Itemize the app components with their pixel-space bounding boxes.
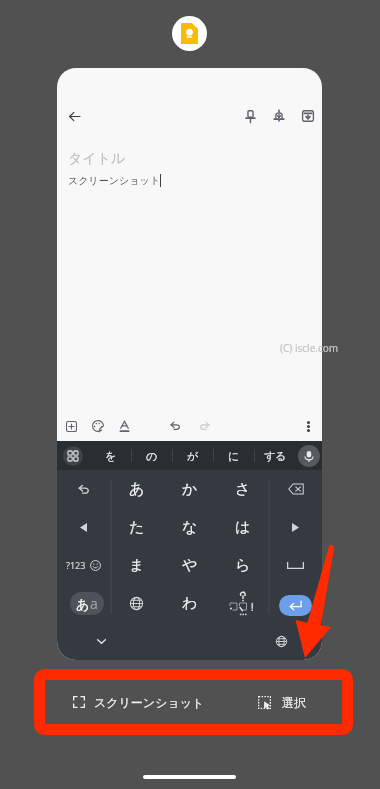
button[interactable] (269, 546, 322, 584)
button[interactable]: Change language (269, 629, 293, 653)
staticText: ま (129, 556, 145, 575)
button[interactable]: わ (163, 584, 216, 622)
button[interactable]: Redo (193, 414, 217, 438)
button[interactable] (216, 584, 269, 622)
button[interactable]: た (110, 508, 163, 546)
staticText: する (264, 449, 287, 463)
staticText: ?123 (66, 559, 86, 571)
staticText: あ (76, 596, 90, 612)
staticText: さ (235, 480, 251, 499)
button[interactable] (57, 508, 110, 546)
button[interactable]: ?123 (57, 546, 110, 584)
staticText: わ (182, 594, 198, 613)
button[interactable] (269, 470, 322, 508)
button[interactable]: Reminder (266, 103, 292, 129)
staticText: か (182, 480, 198, 499)
button[interactable]: Colour (86, 414, 110, 438)
button[interactable]: に (214, 441, 254, 470)
button[interactable]: の (132, 441, 172, 470)
button[interactable]: Enter (269, 584, 322, 622)
staticText: た (129, 518, 145, 537)
button[interactable] (110, 584, 163, 622)
staticText: や (182, 556, 198, 575)
button[interactable]: More options (296, 414, 320, 438)
button[interactable]: Google Keep (172, 16, 207, 51)
button[interactable]: か (163, 470, 216, 508)
staticText: タイトル (68, 150, 126, 168)
staticText: あ (129, 480, 145, 499)
button[interactable]: Back (61, 103, 87, 129)
button[interactable]: あ (57, 584, 110, 622)
button[interactable]: スクリーンショット (40, 681, 215, 723)
button[interactable]: が (173, 441, 213, 470)
button[interactable]: ま (110, 546, 163, 584)
button[interactable] (57, 470, 110, 508)
button[interactable]: Hide keyboard (89, 629, 113, 653)
staticText: 選択 (282, 695, 306, 710)
button[interactable]: あ (110, 470, 163, 508)
button[interactable]: を (90, 441, 131, 470)
staticText: スクリーンショット (94, 695, 205, 710)
staticText: を (105, 449, 117, 463)
button[interactable]: Undo (163, 414, 187, 438)
staticText: スクリーンショット (68, 174, 160, 187)
button[interactable]: な (163, 508, 216, 546)
staticText: a (90, 594, 98, 613)
button[interactable]: 選択 (215, 681, 347, 723)
button[interactable]: Toolbar (63, 446, 83, 466)
button[interactable]: Format (112, 414, 136, 438)
button[interactable]: Archive (295, 103, 321, 129)
button[interactable] (269, 508, 322, 546)
button[interactable]: Voice input (298, 445, 320, 467)
staticText: が (187, 449, 199, 463)
button[interactable]: Pin (237, 103, 263, 129)
staticText: の (146, 449, 158, 463)
button[interactable]: する (255, 441, 295, 470)
staticText: に (228, 449, 240, 463)
button[interactable]: は (216, 508, 269, 546)
staticText: (C) iscle.com (280, 341, 339, 355)
button[interactable]: さ (216, 470, 269, 508)
staticText: は (235, 518, 251, 537)
button[interactable]: Add (59, 414, 83, 438)
button[interactable]: ら (216, 546, 269, 584)
staticText: な (182, 518, 198, 537)
staticText: ら (235, 556, 251, 575)
other: Enter (279, 595, 312, 616)
button[interactable]: や (163, 546, 216, 584)
